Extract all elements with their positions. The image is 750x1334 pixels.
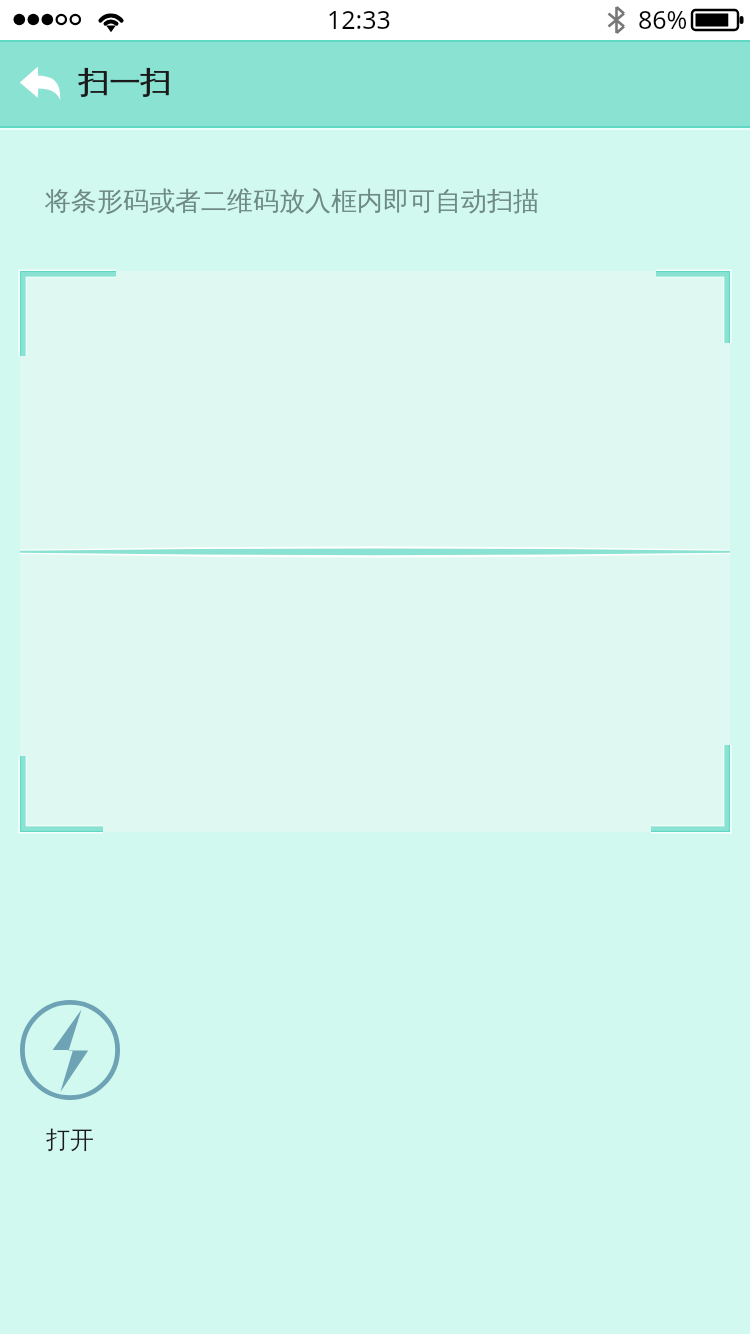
- staticText: 扫一扫: [78, 63, 171, 102]
- button[interactable]: Flashlight: [20, 1000, 120, 1155]
- button[interactable]: Back: [16, 56, 72, 112]
- other: Flashlight: [20, 1000, 120, 1100]
- staticText: 12:33: [327, 2, 391, 36]
- staticText: 扫一扫: [79, 63, 172, 102]
- staticText: 打开: [46, 1125, 94, 1155]
- staticText: 86%: [638, 2, 688, 36]
- staticText: 将条形码或者二维码放入框内即可自动扫描: [45, 185, 539, 218]
